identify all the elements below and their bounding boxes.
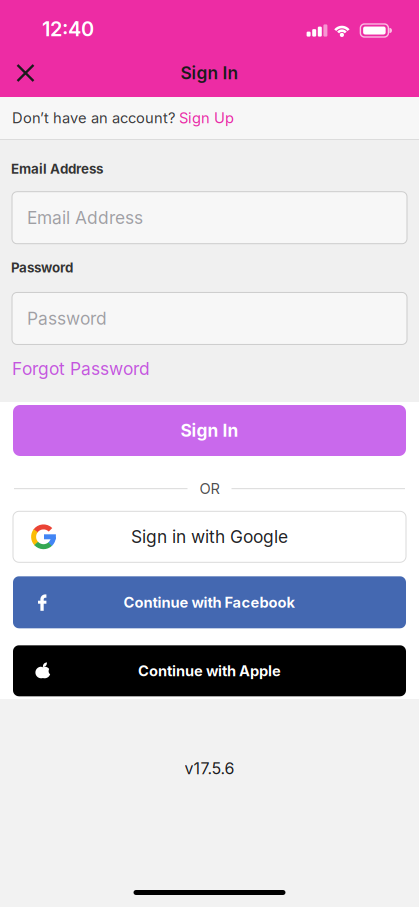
staticText: Password (11, 260, 73, 275)
staticText: Forgot Password (12, 358, 150, 379)
staticText: Password (27, 308, 107, 329)
staticText: 12:40 (42, 17, 94, 41)
staticText: Email Address (11, 161, 103, 177)
staticText: Sign In (180, 420, 238, 441)
button[interactable]: Continue with Facebook (0, 576, 419, 628)
staticText: OR (199, 480, 219, 497)
button[interactable]: Sign Up (179, 109, 234, 127)
staticText: Don’t have an account? (12, 109, 179, 127)
button[interactable]: Close (0, 50, 34, 95)
button[interactable]: Sign in with Google (0, 511, 419, 562)
staticText: Email Address (27, 207, 143, 228)
button[interactable]: Forgot Password (0, 344, 150, 379)
button[interactable]: Sign In (0, 405, 419, 456)
staticText: Sign In (180, 63, 238, 83)
staticText: Sign Up (179, 109, 234, 127)
button[interactable]: Continue with Apple (0, 645, 419, 696)
staticText: Sign in with Google (131, 527, 288, 547)
staticText: v17.5.6 (184, 759, 234, 778)
staticText: Continue with Facebook (123, 594, 295, 611)
staticText: Continue with Apple (138, 662, 281, 679)
